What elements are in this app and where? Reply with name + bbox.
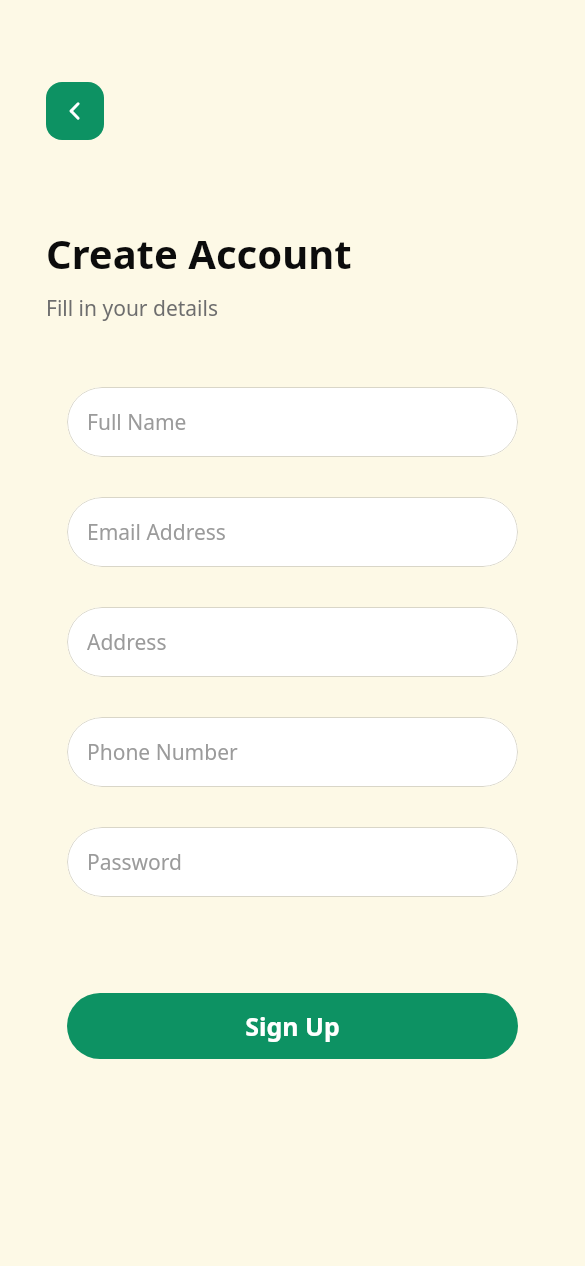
button[interactable]: Sign Up: [67, 993, 518, 1059]
staticText: Phone Number: [87, 738, 238, 767]
button[interactable]: Password: [67, 827, 518, 897]
button[interactable]: Phone Number: [67, 717, 518, 787]
button[interactable]: Back: [46, 82, 104, 140]
staticText: Full Name: [87, 408, 187, 437]
staticText: Password: [87, 848, 182, 877]
staticText: Sign Up: [245, 1009, 340, 1043]
staticText: Address: [87, 628, 167, 657]
button[interactable]: Full Name: [67, 387, 518, 457]
staticText: Email Address: [87, 518, 226, 547]
staticText: Fill in your details: [46, 294, 219, 323]
button[interactable]: Address: [67, 607, 518, 677]
button[interactable]: Email Address: [67, 497, 518, 567]
staticText: Create Account: [46, 226, 352, 280]
